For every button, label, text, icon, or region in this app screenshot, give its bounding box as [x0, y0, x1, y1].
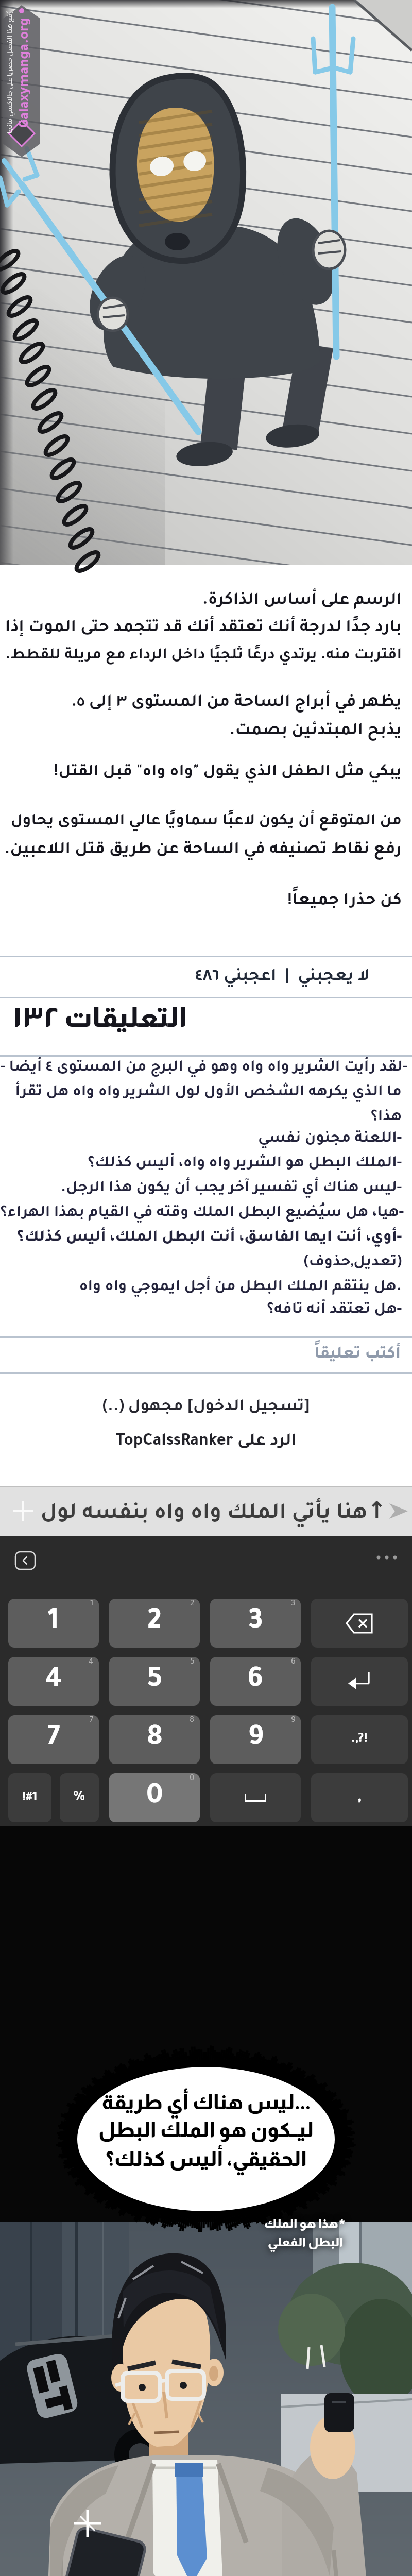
- button[interactable]: %: [60, 1773, 99, 1822]
- button[interactable]: 2: [109, 1599, 200, 1648]
- staticText: 3: [291, 1600, 296, 1608]
- staticText: Galaxymanga.org: [19, 18, 33, 128]
- staticText: رُفع هذا الفصل حصريا على جالاكسي مانجا: [7, 11, 14, 134]
- staticText: 4: [45, 1667, 62, 1697]
- staticText: أكتب تعليقاً: [314, 1347, 401, 1364]
- staticText: 5: [147, 1667, 162, 1697]
- button[interactable]: 4: [8, 1657, 99, 1706]
- staticText: 7: [47, 1725, 60, 1755]
- button[interactable]: !#1: [8, 1773, 51, 1822]
- button[interactable]: [3, 5, 40, 157]
- staticText: يظهر في أبراج الساحة من المستوى ٣ إلى ٥.: [71, 694, 402, 712]
- staticText: يذبح المبتدئين بصمت.: [229, 723, 402, 740]
- staticText: الحقيقي، أليس كذلك؟: [105, 2147, 307, 2171]
- staticText: 9: [291, 1716, 296, 1725]
- button[interactable]: .,?!: [311, 1715, 408, 1764]
- button[interactable]: 0: [109, 1773, 200, 1822]
- staticText: 6: [291, 1658, 296, 1667]
- staticText: هذا؟: [370, 1110, 402, 1126]
- staticText: *هذا هو الملك: [264, 2216, 346, 2230]
- staticText: كن حذرا جميعاً!: [287, 893, 402, 910]
- staticText: ليــكون هو الملك البطل: [98, 2119, 314, 2142]
- staticText: البطل الفعلي: [267, 2235, 343, 2249]
- button[interactable]: [311, 1599, 408, 1648]
- button[interactable]: 5: [109, 1657, 200, 1706]
- button[interactable]: [388, 1501, 409, 1521]
- staticText: ...ليس هناك أي طريقة: [101, 2091, 311, 2114]
- staticText: ↑هنا يأتي الملك واه واه بنفسه لول: [40, 1497, 386, 1526]
- staticText: 1: [48, 1608, 59, 1638]
- staticText: 0: [190, 1774, 195, 1783]
- staticText: اقتربت منه. يرتدي درعًا ثلجيًا داخل الرد…: [5, 648, 402, 664]
- staticText: ما الذي يكرهه الشخص الأول لول الشرير واه…: [15, 1085, 402, 1101]
- staticText: !#1: [22, 1791, 38, 1805]
- staticText: الرسم على أساس الذاكرة.: [202, 592, 402, 610]
- button[interactable]: [311, 1657, 408, 1706]
- staticText: رفع نقاط تصنيفه في الساحة عن طريق قتل ال…: [4, 842, 402, 859]
- staticText: .,?!: [351, 1733, 368, 1747]
- staticText: يبكي مثل الطفل الذي يقول "واه واه" قبل ا…: [54, 765, 402, 782]
- staticText: 1: [90, 1600, 94, 1608]
- staticText: 0: [146, 1783, 163, 1813]
- button[interactable]: 9: [210, 1715, 301, 1764]
- staticText: التعليقات ١٣٢: [12, 1002, 187, 1032]
- button[interactable]: 3: [210, 1599, 301, 1648]
- staticText: (تعديل,حذوف): [303, 1255, 402, 1271]
- staticText: 9: [248, 1725, 264, 1755]
- staticText: -هيا، هل سيُضيع البطل الملك وقته في القي…: [0, 1206, 402, 1222]
- staticText: %: [73, 1790, 85, 1806]
- staticText: 7: [90, 1716, 94, 1725]
- staticText: -ليس هناك أي تفسير آخر يجب أن يكون هذا ا…: [60, 1181, 402, 1197]
- button[interactable]: ↑هنا يأتي الملك واه واه بنفسه لول: [0, 1486, 412, 1536]
- button[interactable]: أكتب تعليقاً: [0, 1338, 412, 1372]
- staticText: 2: [190, 1600, 195, 1608]
- button[interactable]: [376, 1555, 398, 1560]
- button[interactable]: لا يعجبني | اعجبني ٤٨٦: [0, 957, 412, 997]
- button[interactable]: 8: [109, 1715, 200, 1764]
- button[interactable]: 6: [210, 1657, 301, 1706]
- staticText: 8: [190, 1716, 195, 1725]
- staticText: 5: [190, 1658, 195, 1667]
- staticText: 3: [248, 1608, 263, 1638]
- staticText: الرد على TopCalssRanker: [115, 1433, 297, 1451]
- staticText: 6: [248, 1667, 264, 1697]
- button[interactable]: 1: [8, 1599, 99, 1648]
- staticText: ,: [358, 1789, 361, 1807]
- staticText: [تسجيل الدخول] مجهول (..): [102, 1399, 310, 1416]
- staticText: -أوي، أنت ايها الفاسق، أنت البطل الملك، …: [16, 1230, 402, 1246]
- staticText: بارد جدًا لدرجة أنك تعتقد أنك قد تتجمد ح…: [5, 620, 402, 637]
- staticText: -الملك البطل هو الشرير واه واه، أليس كذل…: [88, 1156, 402, 1172]
- staticText: 4: [89, 1658, 94, 1667]
- staticText: -لقد رأيت الشرير واه واه وهو في البرج من…: [0, 1060, 402, 1076]
- button[interactable]: 7: [8, 1715, 99, 1764]
- button[interactable]: ,: [311, 1773, 408, 1822]
- button[interactable]: [210, 1773, 301, 1822]
- button[interactable]: [15, 1552, 35, 1569]
- staticText: .هل ينتقم الملك البطل من أجل ايموجي واه …: [79, 1280, 402, 1296]
- staticText: 2: [147, 1608, 162, 1638]
- staticText: -هل تعتقد أنه تافه؟: [267, 1302, 402, 1318]
- staticText: من المتوقع أن يكون لاعبًا سماويًا عالي ا…: [10, 814, 402, 830]
- staticText: 8: [147, 1725, 163, 1755]
- staticText: لا يعجبني | اعجبني ٤٨٦: [195, 969, 370, 986]
- staticText: -اللعنة مجنون نفسي: [258, 1131, 402, 1147]
